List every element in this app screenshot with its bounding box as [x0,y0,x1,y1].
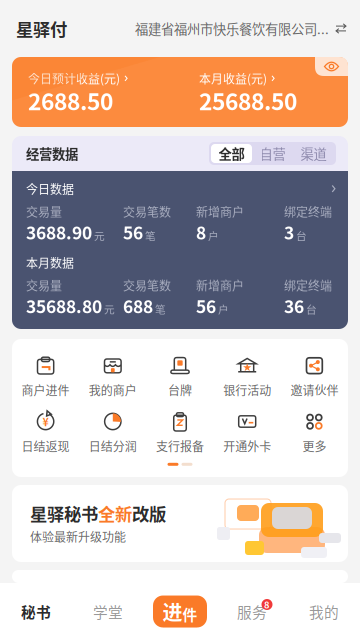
button[interactable]: 显示或隐藏收益金额 [315,57,348,76]
staticText: 银行活动 [223,384,271,396]
button[interactable]: 更多 [281,412,348,452]
button[interactable]: 本月收益(元) [199,72,339,111]
staticText: 商户进件 [22,384,70,396]
staticText: 新增商户 [196,279,244,291]
staticText: 36 [284,297,304,314]
button[interactable]: 福建省福州市快乐餐饮有限公司... [135,22,346,35]
button[interactable]: 学堂 [72,589,144,633]
staticText: 经营数据 [26,147,78,160]
staticText: 56 [196,297,216,314]
staticText: 我的 [309,604,339,619]
staticText: 支行报备 [156,440,204,452]
staticText: 交易量 [26,206,62,217]
staticText: 服务 [237,604,267,619]
staticText: 全部 [218,147,244,160]
button[interactable]: 秘书 [0,589,72,633]
staticText: 台 [296,230,307,240]
staticText: 更多 [302,440,326,452]
staticText: 交易笔数 [123,206,171,217]
staticText: 福建省福州市快乐餐饮有限公司... [135,22,329,35]
staticText: 户 [218,304,229,314]
button[interactable]: 今日预计收益(元) [28,72,199,111]
button[interactable]: 我的 [288,589,360,633]
staticText: 台牌 [168,384,192,396]
staticText: 交易笔数 [123,279,171,291]
staticText: 改版 [132,505,166,522]
staticText: 全新 [98,505,132,522]
staticText: 本月数据 [26,256,74,268]
staticText: 进 [162,602,182,621]
staticText: 我的商户 [89,384,137,396]
staticText: 8 [264,600,270,609]
button[interactable]: 自营 [252,144,293,163]
button[interactable]: 进 [153,595,207,627]
staticText: ¥ [43,416,49,427]
staticText: 今日数据 [26,183,74,195]
staticText: 星驿秘书 [30,505,98,522]
staticText: 25688.50 [199,89,297,111]
staticText: 渠道 [300,147,326,160]
button[interactable]: 渠道 [293,144,334,163]
staticText: 自营 [259,147,285,160]
button[interactable]: 星驿秘书 [12,485,348,562]
staticText: 学堂 [93,604,123,619]
button[interactable]: 服务 [216,589,288,633]
staticText: 日结返现 [22,440,70,452]
staticText: 元 [94,230,105,240]
button[interactable]: 支行报备 [146,412,214,452]
button[interactable]: 我的商户 [79,356,146,396]
staticText: 户 [208,230,219,240]
staticText: 交易量 [26,279,62,291]
staticText: 邀请伙伴 [290,384,338,396]
staticText: 8 [196,223,206,240]
staticText: 3688.90 [26,223,92,240]
staticText: 绑定终端 [284,279,332,291]
staticText: 日结分润 [89,440,137,452]
staticText: 今日预计收益(元) [28,72,120,84]
staticText: 元 [104,304,115,314]
staticText: 56 [123,223,143,240]
button[interactable]: 台牌 [146,356,214,396]
staticText: 体验最新升级功能 [30,531,126,542]
staticText: 台 [306,304,317,314]
staticText: 笔 [155,304,166,314]
button[interactable]: ¥ [12,412,79,452]
button[interactable]: 商户进件 [12,356,79,396]
button[interactable]: 邀请伙伴 [281,356,348,396]
button[interactable]: 全部 [211,144,252,163]
button[interactable]: 开通外卡 [214,412,281,452]
staticText: 绑定终端 [284,206,332,217]
staticText: 件 [182,607,197,621]
staticText: 新增商户 [196,206,244,217]
staticText: 688 [123,297,153,314]
staticText: 星驿付 [16,20,67,37]
staticText: 秘书 [21,604,51,619]
button[interactable]: 今日数据 [26,183,336,195]
staticText: 开通外卡 [223,440,271,452]
staticText: 本月收益(元) [199,72,267,84]
staticText: 笔 [145,230,156,240]
button[interactable]: 银行活动 [214,356,281,396]
staticText: 35688.80 [26,297,102,314]
staticText: 3 [284,223,294,240]
staticText: 2688.50 [28,89,113,111]
button[interactable]: 日结分润 [79,412,146,452]
